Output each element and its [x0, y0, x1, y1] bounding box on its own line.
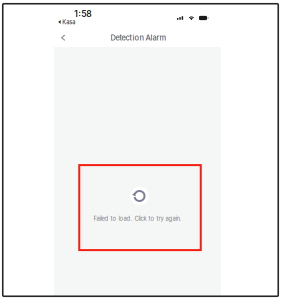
staticText: Detection Alarm	[111, 33, 167, 42]
staticText: 1:58	[74, 9, 91, 19]
button[interactable]: Back	[53, 28, 73, 47]
button[interactable]: Failed to load. Click to try again.	[54, 47, 221, 296]
staticText: Failed to load. Click to try again.	[93, 215, 181, 222]
staticText: Kasa	[62, 19, 75, 25]
